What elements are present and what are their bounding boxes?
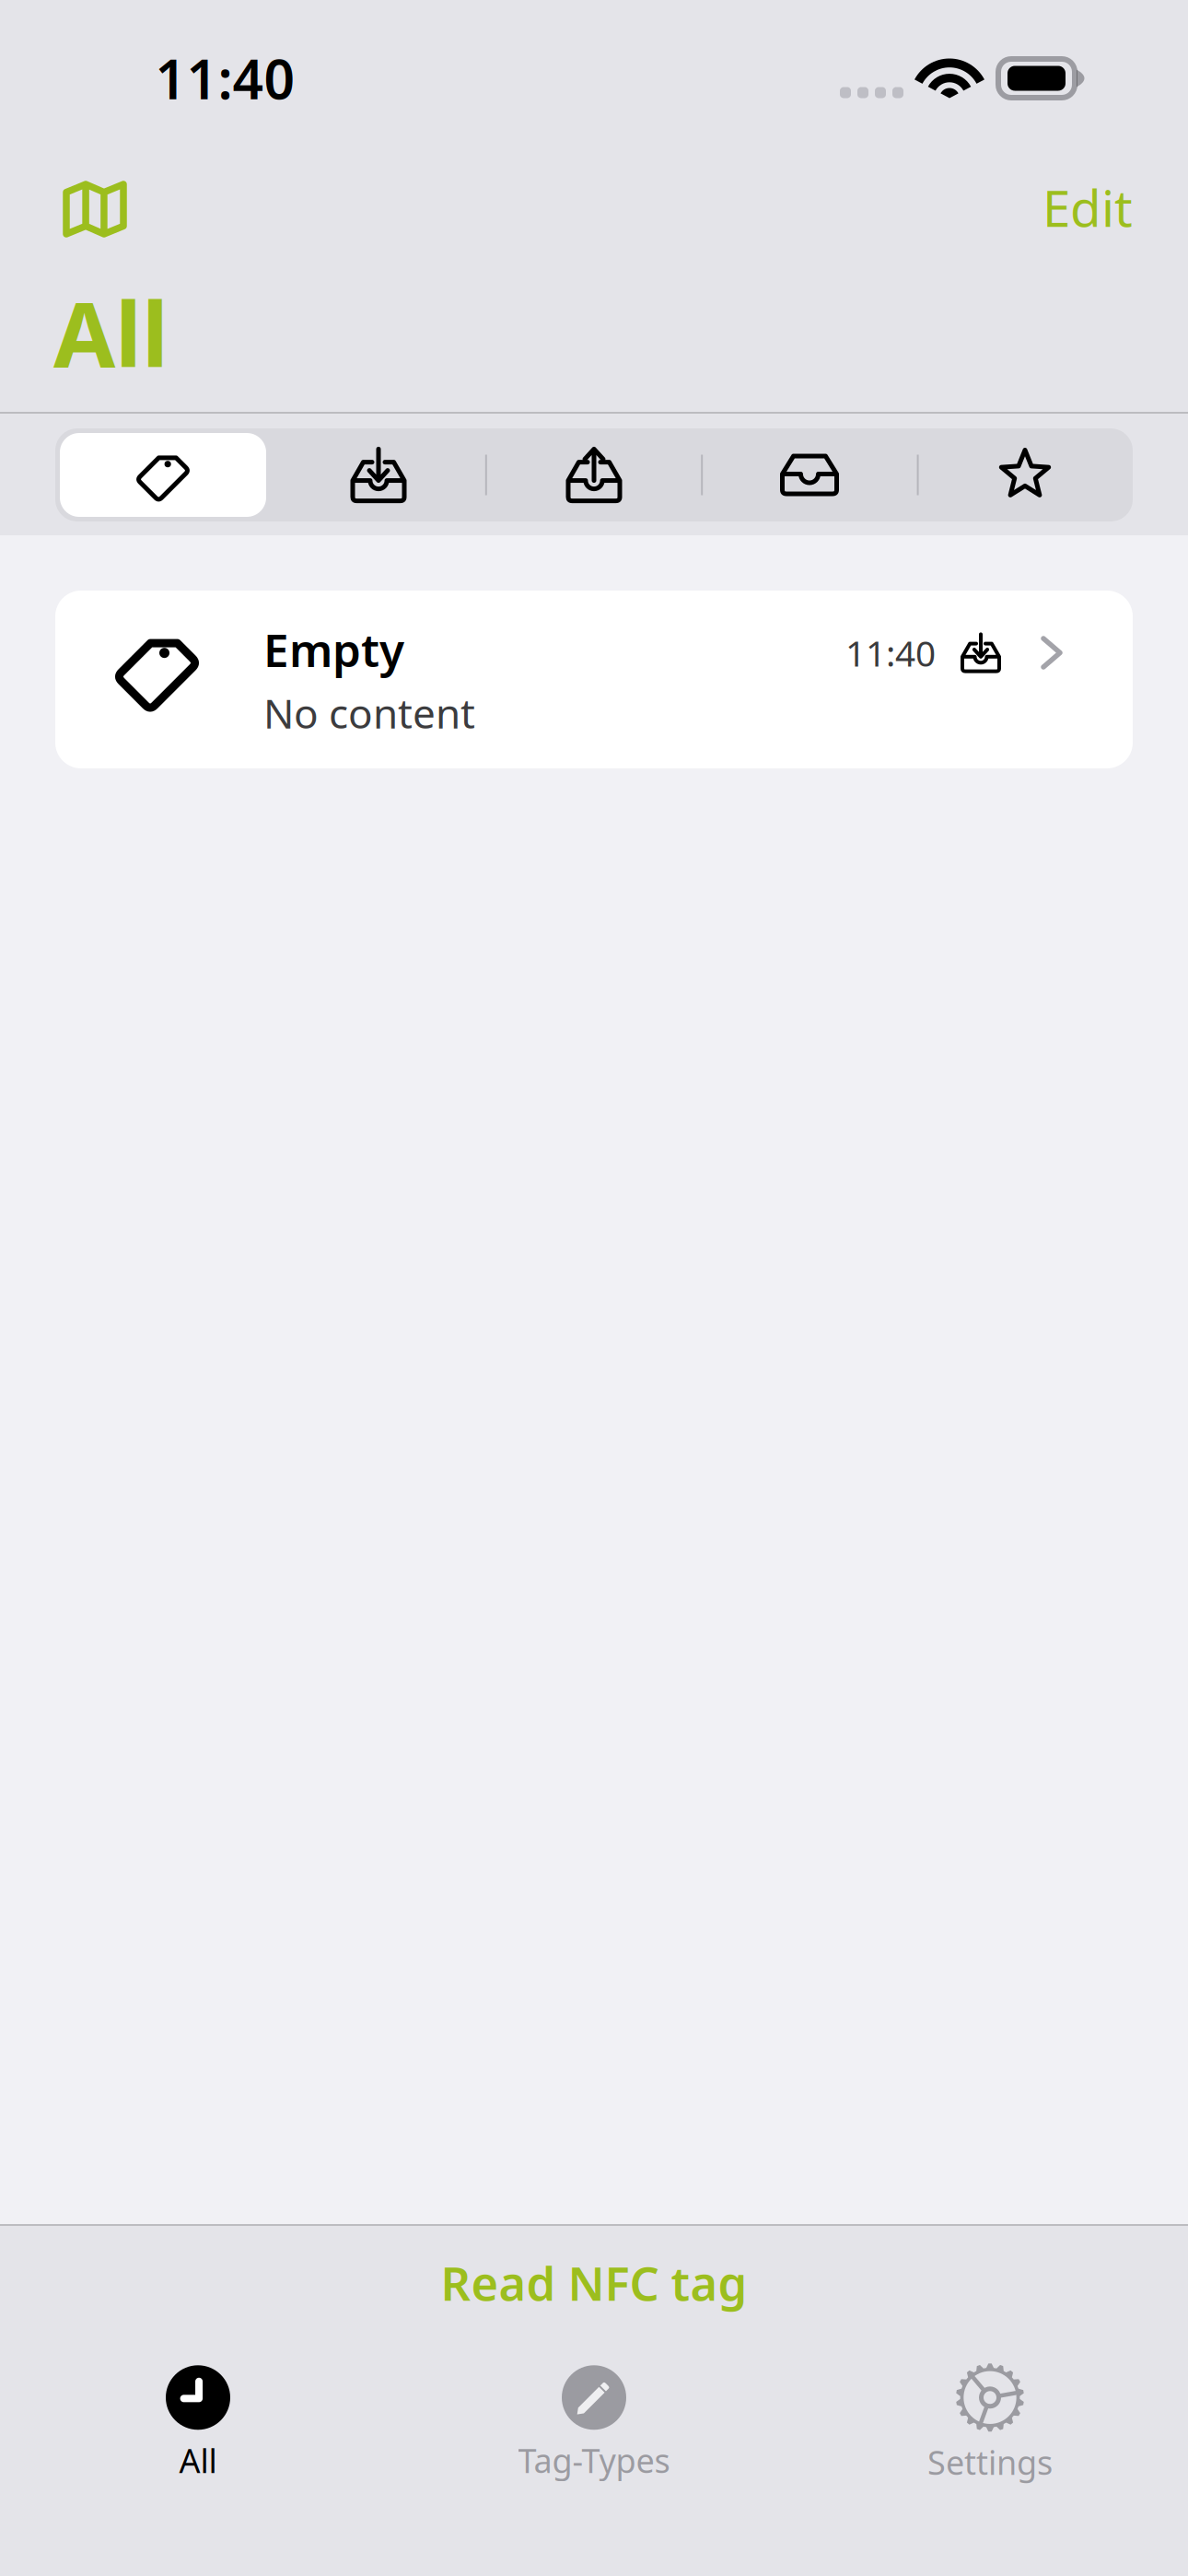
button[interactable]: Received tags xyxy=(271,428,486,521)
button[interactable]: Sent tags xyxy=(486,428,702,521)
staticText: All xyxy=(53,273,169,392)
staticText: 11:40 xyxy=(155,42,295,114)
staticText: Edit xyxy=(1042,174,1133,241)
button[interactable]: Map xyxy=(55,164,134,234)
button[interactable]: Read NFC tag xyxy=(0,2226,1188,2327)
staticText: No content xyxy=(263,686,475,740)
staticText: All xyxy=(179,2438,217,2482)
button[interactable]: Empty xyxy=(55,591,1133,768)
button[interactable]: Settings xyxy=(792,2327,1188,2493)
staticText: Empty xyxy=(263,619,404,679)
button[interactable]: Inbox xyxy=(702,428,917,521)
button[interactable]: Edit xyxy=(1042,152,1133,246)
button[interactable]: Tag-Types xyxy=(396,2328,792,2491)
staticText: 11:40 xyxy=(845,629,936,676)
staticText: Read NFC tag xyxy=(441,2252,747,2314)
button[interactable]: All tags xyxy=(55,428,271,521)
button[interactable]: All xyxy=(0,2328,396,2491)
button[interactable]: Favorites xyxy=(917,428,1133,521)
staticText: Settings xyxy=(927,2440,1053,2484)
staticText: Tag-Types xyxy=(518,2438,670,2482)
